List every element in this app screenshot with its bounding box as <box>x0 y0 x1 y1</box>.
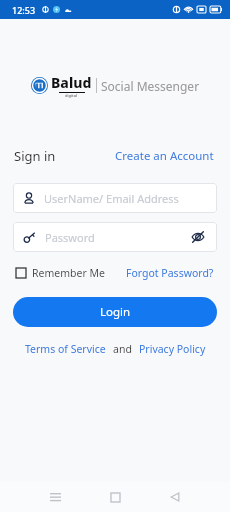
staticText: 12:53 <box>12 4 36 16</box>
button[interactable]: Create an Account <box>113 146 216 166</box>
staticText: Privacy Policy <box>139 342 206 356</box>
staticText: Create an Account <box>115 148 214 164</box>
button[interactable]: Password <box>13 222 217 252</box>
staticText: digital <box>65 93 78 98</box>
button[interactable]: Recents <box>42 484 68 510</box>
staticText: and <box>113 342 132 356</box>
staticText: Balud <box>51 73 92 92</box>
button[interactable]: Privacy Policy <box>137 340 208 358</box>
button[interactable]: Home <box>102 484 128 510</box>
button[interactable]: Login <box>13 297 217 327</box>
staticText: Social Messenger <box>101 78 200 94</box>
button[interactable]: Remember Me <box>14 263 107 283</box>
button[interactable]: UserName/ Email Address <box>13 183 217 213</box>
button[interactable]: Terms of Service <box>23 340 108 358</box>
staticText: Password <box>45 230 95 245</box>
staticText: Remember Me <box>32 266 105 280</box>
staticText: Sign in <box>14 147 56 165</box>
button[interactable]: Back <box>162 484 188 510</box>
button[interactable]: Show password <box>187 226 209 248</box>
staticText: UserName/ Email Address <box>44 191 179 206</box>
button[interactable]: Forgot Password? <box>124 263 216 283</box>
staticText: Terms of Service <box>25 342 106 356</box>
staticText: Login <box>100 304 131 320</box>
staticText: Forgot Password? <box>126 266 214 280</box>
